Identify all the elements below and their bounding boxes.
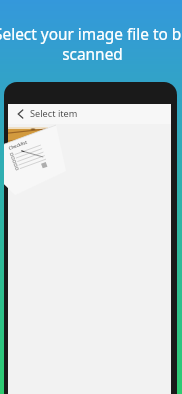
staticText: Select your image file to be (0, 24, 182, 45)
button[interactable]: Back (11, 104, 29, 124)
button[interactable]: Checklist image (8, 127, 48, 167)
staticText: Select item (30, 107, 78, 120)
staticText: scanned (62, 44, 123, 65)
